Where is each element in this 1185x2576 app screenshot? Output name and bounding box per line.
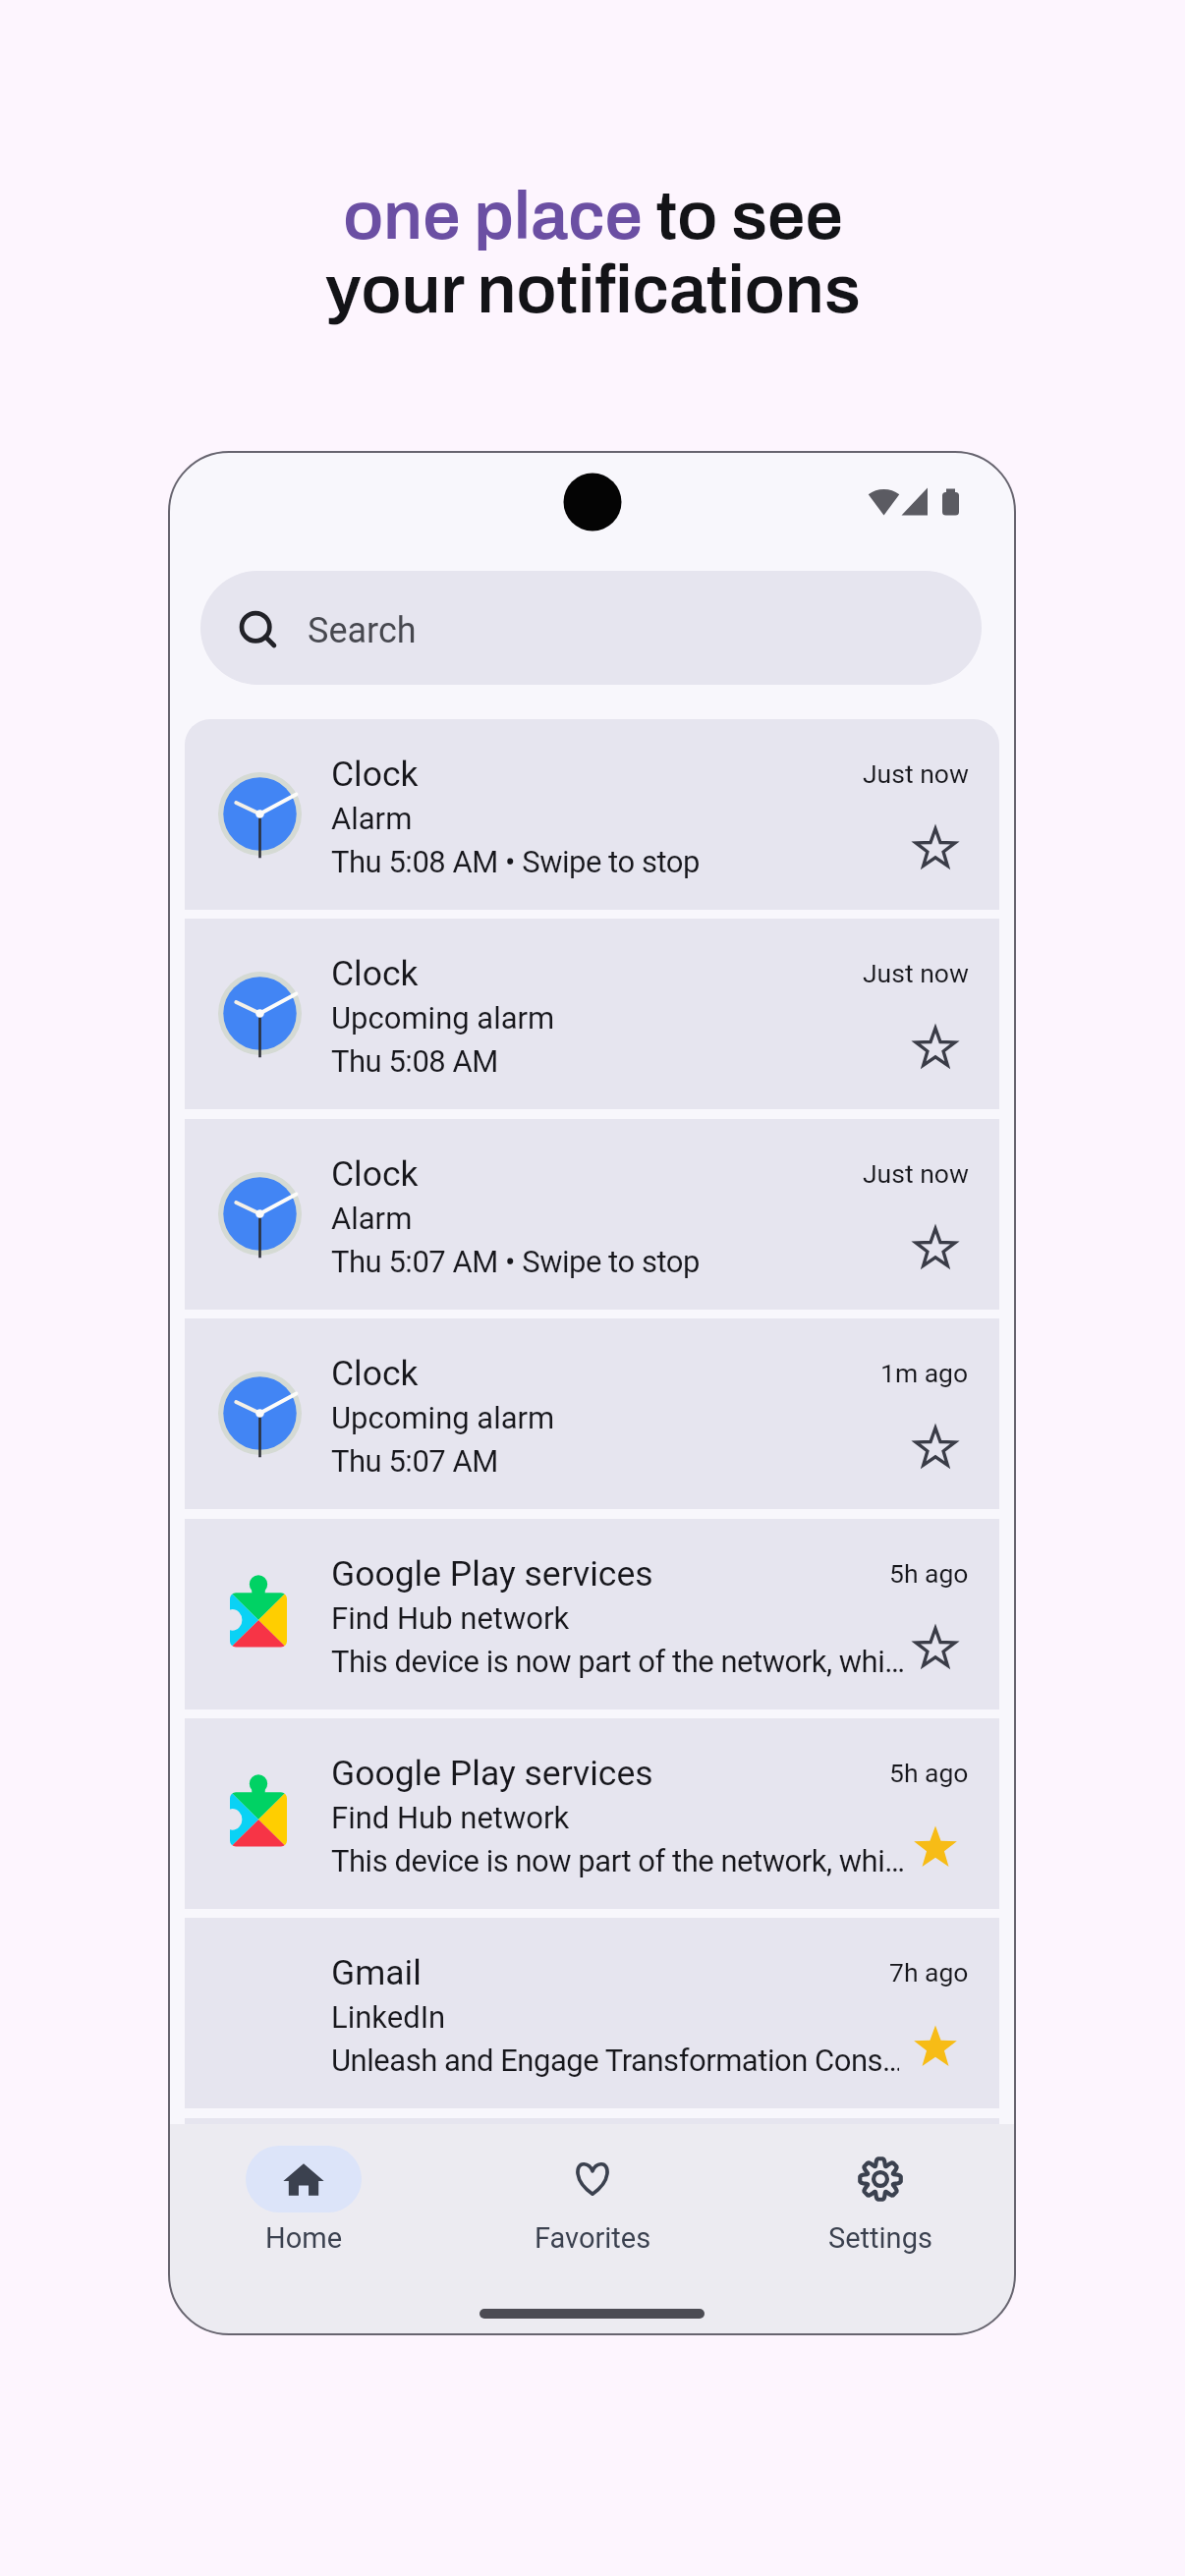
staticText: Unleash and Engage Transformation Cons… <box>331 2043 899 2078</box>
staticText: Clock <box>331 754 899 795</box>
button[interactable]: Add to favorites <box>908 1220 963 1275</box>
staticText: Clock <box>331 953 899 994</box>
staticText: one place to see <box>343 180 843 253</box>
staticText: Thu 5:08 AM <box>331 1043 921 1079</box>
button[interactable]: Add to favorites <box>908 1620 963 1675</box>
button[interactable]: Settings <box>753 2138 1008 2285</box>
button[interactable]: Google Play services <box>185 1519 999 1709</box>
staticText: Upcoming alarm <box>331 1000 899 1036</box>
staticText: This device is now part of the network, … <box>331 1644 923 1679</box>
button[interactable]: Add to favorites <box>908 1420 963 1475</box>
staticText: Alarm <box>331 1201 899 1236</box>
button[interactable]: Clock <box>185 719 999 910</box>
button[interactable]: Clock <box>185 1119 999 1310</box>
button[interactable]: Gmail <box>185 1918 999 2108</box>
staticText: 7h ago <box>889 1957 969 1988</box>
staticText: Clock <box>331 1153 899 1195</box>
staticText: Alarm <box>331 801 899 836</box>
staticText: Find Hub network <box>331 1600 899 1636</box>
button[interactable]: Add to favorites <box>908 1020 963 1075</box>
staticText: Clock <box>331 1353 899 1394</box>
button[interactable]: Remove from favorites <box>908 2019 963 2074</box>
staticText: LinkedIn <box>331 1999 899 2035</box>
staticText: Home <box>265 2221 343 2255</box>
button[interactable]: Google Play services <box>185 1718 999 1909</box>
staticText: Find Hub network <box>331 1800 899 1835</box>
staticText: Settings <box>828 2221 932 2255</box>
button[interactable]: Add to favorites <box>908 820 963 875</box>
staticText: Google Play services <box>331 1553 899 1595</box>
button[interactable]: Favorites <box>465 2138 720 2285</box>
staticText: 5h ago <box>889 1558 969 1589</box>
button[interactable]: Search <box>200 571 982 685</box>
staticText: your notifications <box>325 253 861 327</box>
staticText: Favorites <box>535 2221 651 2255</box>
staticText: Just now <box>863 1158 969 1189</box>
staticText: Upcoming alarm <box>331 1400 899 1435</box>
staticText: Search <box>308 610 417 651</box>
staticText: Google Play services <box>331 1753 899 1794</box>
button[interactable]: Clock <box>185 919 999 1109</box>
staticText: Just now <box>863 958 969 988</box>
staticText: 5h ago <box>889 1758 969 1788</box>
button[interactable]: Clock <box>185 1318 999 1509</box>
staticText: Just now <box>863 758 969 789</box>
staticText: Thu 5:07 AM <box>331 1443 921 1479</box>
button[interactable]: Home <box>176 2138 431 2285</box>
button[interactable]: Remove from favorites <box>908 1820 963 1875</box>
staticText: Gmail <box>331 1952 899 1993</box>
staticText: 1m ago <box>880 1358 969 1388</box>
staticText: This device is now part of the network, … <box>331 1843 923 1878</box>
staticText: Thu 5:08 AM • Swipe to stop <box>331 844 921 879</box>
staticText: Thu 5:07 AM • Swipe to stop <box>331 1244 921 1279</box>
